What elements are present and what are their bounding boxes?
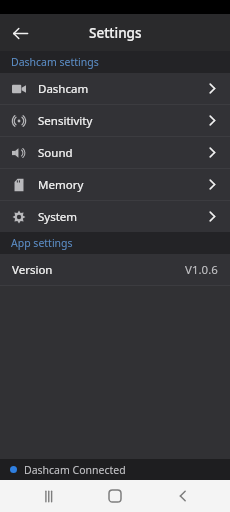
button[interactable]: Memory <box>0 169 230 200</box>
staticText: System <box>38 209 78 225</box>
staticText: Dashcam Connected <box>24 463 126 477</box>
staticText: Version <box>12 262 53 278</box>
staticText: Sensitivity <box>38 113 93 129</box>
staticText: Dashcam <box>38 81 89 97</box>
staticText: Settings <box>89 24 142 42</box>
staticText: Dashcam settings <box>11 55 99 69</box>
button[interactable]: Sensitivity <box>0 105 230 136</box>
button[interactable]: System <box>0 201 230 232</box>
button[interactable]: Recent apps <box>28 480 68 512</box>
button[interactable]: Back <box>163 480 203 512</box>
staticText: Memory <box>38 177 84 193</box>
staticText: Sound <box>38 145 73 161</box>
button[interactable]: Dashcam <box>0 73 230 104</box>
button[interactable]: Version <box>0 254 230 285</box>
button[interactable]: Home <box>95 480 135 512</box>
button[interactable]: Back <box>3 16 37 50</box>
staticText: V1.0.6 <box>185 262 218 278</box>
button[interactable]: Sound <box>0 137 230 168</box>
staticText: App settings <box>11 236 73 250</box>
